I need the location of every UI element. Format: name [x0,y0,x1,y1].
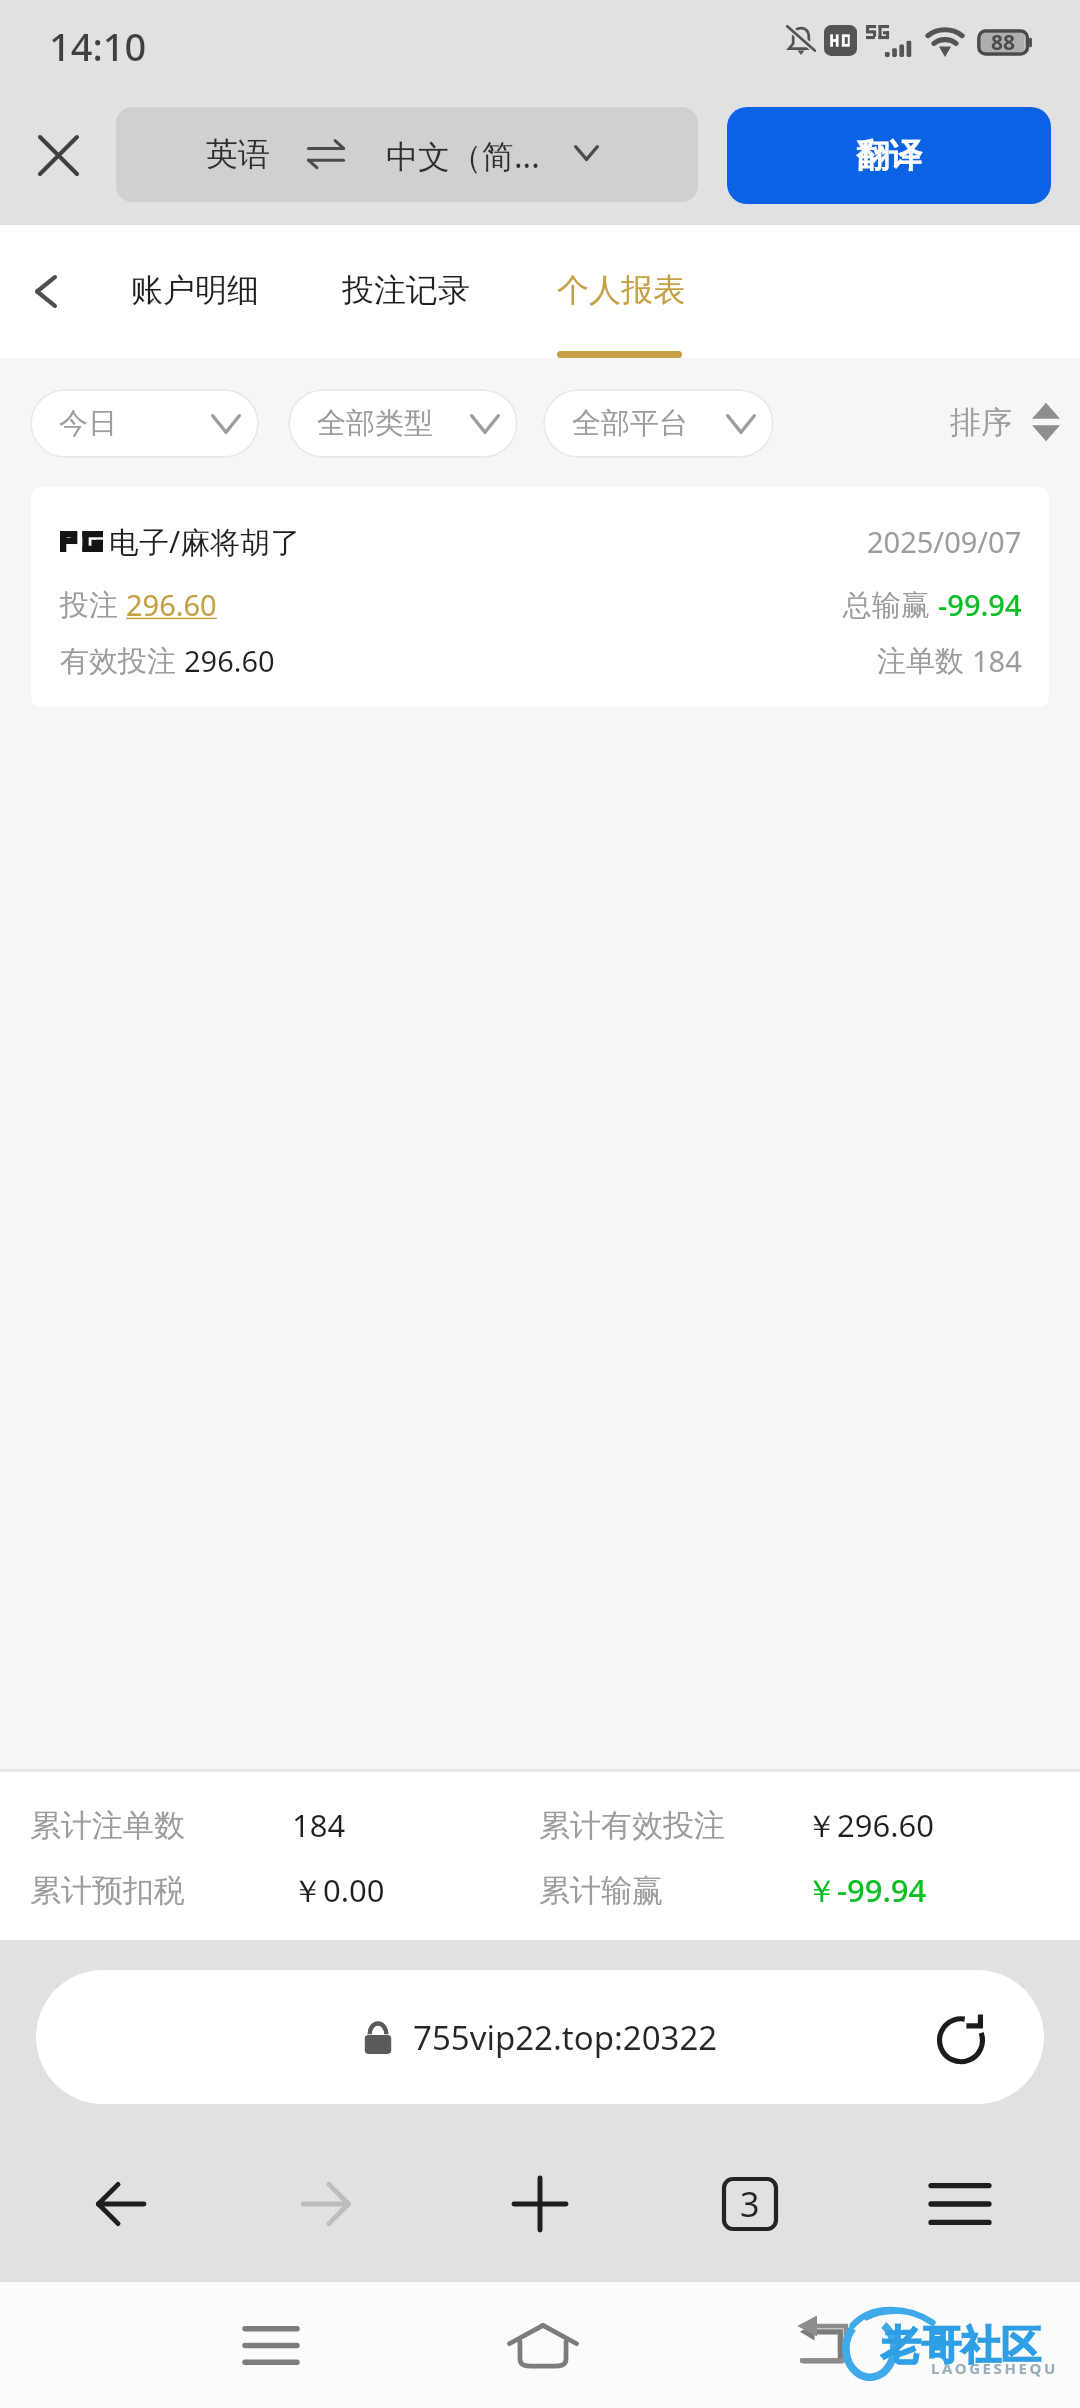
staticText: 今日 [59,405,117,442]
staticText: 累计注单数 [30,1806,185,1845]
staticText: 14:10 [49,20,147,72]
staticText: 老哥社区 [881,2320,1041,2370]
button[interactable]: 全部类型 [288,389,518,458]
button[interactable]: Recent apps [211,2290,331,2400]
staticText: 2025/09/07 [867,522,1022,561]
button[interactable]: 排序 [950,388,1060,456]
staticText: 个人报表 [557,270,685,310]
button[interactable]: 755vip22.top:20322 [36,1970,1044,2104]
button[interactable]: Back [10,255,82,327]
button[interactable]: Back [66,2150,174,2258]
button[interactable]: New tab [486,2150,594,2258]
staticText: 账户明细 [131,270,259,310]
staticText: 184 [972,641,1022,680]
button[interactable]: 今日 [30,389,259,458]
staticText: 全部类型 [317,405,433,442]
button[interactable]: Home [483,2290,603,2400]
staticText: 88 [991,28,1016,55]
staticText: -99.94 [938,585,1022,624]
staticText: 英语 [206,134,270,174]
staticText: 有效投注 [60,640,184,680]
staticText: 累计输赢 [539,1871,663,1910]
staticText: 中文（简... [386,134,540,178]
staticText: 296.60 [184,641,275,680]
staticText: 排序 [950,403,1012,442]
button[interactable]: 翻译 [727,107,1051,204]
staticText: 296.60 [126,585,217,624]
button[interactable]: 全部平台 [543,389,774,458]
staticText: 3 [740,2181,760,2227]
button[interactable]: Forward [273,2150,381,2258]
staticText: ￥296.60 [806,1804,934,1846]
staticText: 累计有效投注 [539,1806,725,1845]
staticText: 电子/麻将胡了 [109,521,301,562]
staticText: 累计预扣税 [30,1871,185,1910]
staticText: 总输赢 [843,584,938,624]
staticText: 184 [292,1804,346,1846]
button[interactable]: Back [768,2290,888,2400]
staticText: LAOGESHEQU [931,2358,1058,2378]
button[interactable]: 个人报表 [551,245,691,335]
staticText: 注单数 [877,640,972,680]
button[interactable]: Tabs [696,2150,804,2258]
staticText: ￥-99.94 [806,1869,927,1911]
staticText: 投注记录 [342,270,470,310]
staticText: 投注 [60,584,126,624]
button[interactable]: Menu [906,2150,1014,2258]
button[interactable]: Close translate bar [22,119,94,191]
staticText: 全部平台 [572,405,688,442]
button[interactable]: 投注记录 [336,245,476,335]
button[interactable]: 英语 [116,107,698,202]
staticText: ￥0.00 [292,1869,385,1911]
staticText: 翻译 [856,135,922,177]
button[interactable]: Reload [923,1999,999,2075]
button[interactable]: 账户明细 [125,245,265,335]
button[interactable]: 电子/麻将胡了 [31,487,1049,707]
staticText: 755vip22.top:20322 [413,2015,718,2060]
